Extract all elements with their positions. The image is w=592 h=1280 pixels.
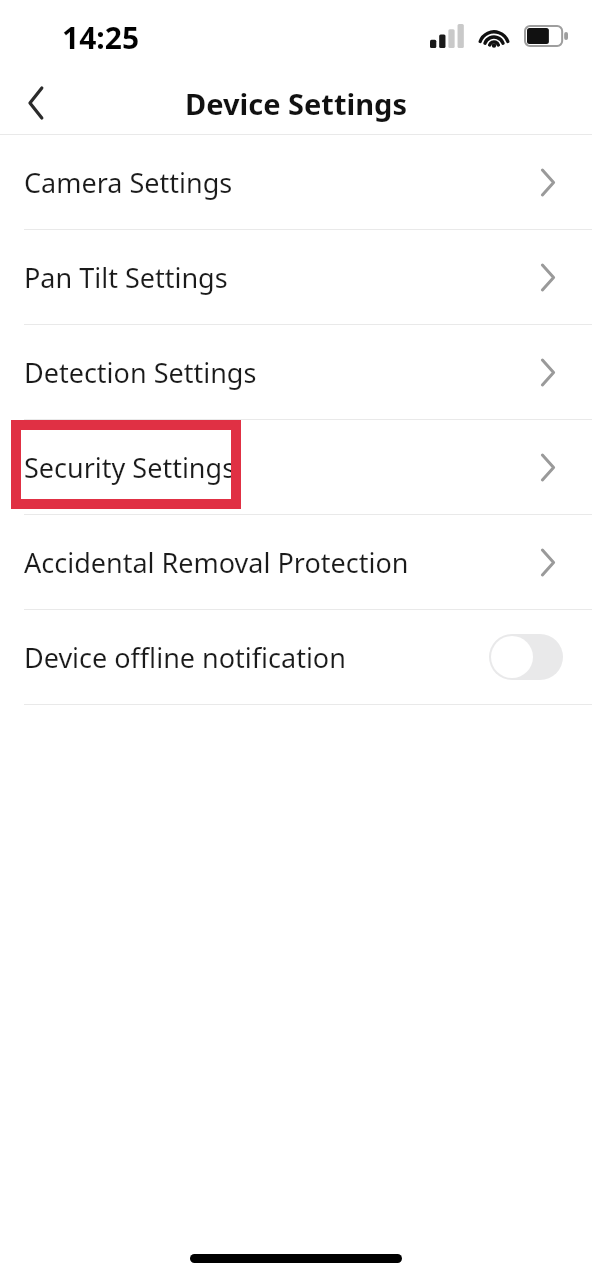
button[interactable]: Accidental Removal Protection xyxy=(0,515,592,609)
staticText: Device Settings xyxy=(185,84,407,123)
button[interactable]: Back xyxy=(9,75,65,131)
button[interactable]: Device offline notification toggle xyxy=(489,634,563,680)
button[interactable]: Device offline notification xyxy=(0,610,592,704)
button[interactable]: Detection Settings xyxy=(0,325,592,419)
staticText: Pan Tilt Settings xyxy=(24,259,540,296)
button[interactable]: Pan Tilt Settings xyxy=(0,230,592,324)
button[interactable]: Security Settings xyxy=(0,420,592,514)
staticText: Accidental Removal Protection xyxy=(24,544,540,581)
staticText: Camera Settings xyxy=(24,164,540,201)
staticText: Security Settings xyxy=(24,449,540,486)
staticText: Device offline notification xyxy=(24,639,489,676)
staticText: 14:25 xyxy=(62,17,140,58)
button[interactable]: Camera Settings xyxy=(0,135,592,229)
staticText: Detection Settings xyxy=(24,354,540,391)
